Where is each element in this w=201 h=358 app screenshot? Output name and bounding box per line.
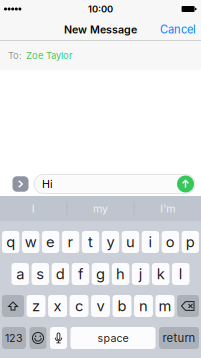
staticText: k xyxy=(157,265,165,283)
staticText: New Message xyxy=(64,23,137,36)
staticText: i xyxy=(148,233,152,251)
staticText: x xyxy=(53,297,61,315)
staticText: return xyxy=(162,331,195,345)
button[interactable]: space xyxy=(70,327,155,349)
button[interactable]: my xyxy=(67,196,134,221)
button[interactable]: Shift xyxy=(2,295,24,317)
staticText: v xyxy=(96,297,104,315)
button[interactable]: I'm xyxy=(134,196,201,221)
button[interactable]: l xyxy=(172,263,189,285)
staticText: f xyxy=(78,265,83,283)
button[interactable]: 123 xyxy=(2,327,26,349)
staticText: l xyxy=(179,265,183,283)
staticText: Cancel xyxy=(160,23,196,36)
staticText: j xyxy=(139,265,143,283)
staticText: c xyxy=(75,297,83,315)
staticText: a xyxy=(16,265,24,283)
staticText: r xyxy=(68,233,74,251)
staticText: n xyxy=(139,297,148,315)
button[interactable]: m xyxy=(155,295,174,317)
button[interactable]: v xyxy=(91,295,110,317)
staticText: w xyxy=(25,233,37,251)
staticText: my xyxy=(93,202,108,215)
button[interactable]: I xyxy=(0,196,66,221)
button[interactable]: w xyxy=(22,231,39,253)
button[interactable]: p xyxy=(182,231,199,253)
staticText: z xyxy=(32,297,40,315)
staticText: o xyxy=(166,233,175,251)
button[interactable]: o xyxy=(162,231,179,253)
staticText: y xyxy=(106,233,114,251)
button[interactable]: Emoji xyxy=(29,327,46,349)
button[interactable]: f xyxy=(72,263,89,285)
button[interactable]: c xyxy=(70,295,88,317)
staticText: u xyxy=(126,233,135,251)
button[interactable]: i xyxy=(142,231,159,253)
staticText: 123 xyxy=(5,331,23,344)
staticText: s xyxy=(36,265,44,283)
staticText: d xyxy=(56,265,65,283)
button[interactable]: e xyxy=(42,231,59,253)
button[interactable]: x xyxy=(48,295,67,317)
staticText: m xyxy=(158,297,171,315)
button[interactable]: Dictation xyxy=(50,327,67,349)
button[interactable]: Send xyxy=(176,174,194,194)
button[interactable]: z xyxy=(27,295,45,317)
staticText: space xyxy=(97,331,128,344)
staticText: To: xyxy=(8,50,22,61)
button[interactable]: a xyxy=(11,263,29,285)
staticText: t xyxy=(88,233,93,251)
button[interactable]: q xyxy=(2,231,19,253)
staticText: I'm xyxy=(160,202,175,215)
button[interactable]: y xyxy=(102,231,119,253)
staticText: p xyxy=(186,233,195,251)
button[interactable]: k xyxy=(152,263,169,285)
button[interactable]: Delete xyxy=(177,295,199,317)
button[interactable]: s xyxy=(32,263,49,285)
staticText: e xyxy=(46,233,55,251)
staticText: I xyxy=(32,202,35,215)
button[interactable]: return xyxy=(159,327,199,349)
button[interactable]: More options xyxy=(12,173,29,195)
button[interactable]: j xyxy=(132,263,149,285)
staticText: Zoe Taylor xyxy=(26,50,73,61)
button[interactable]: u xyxy=(122,231,139,253)
button[interactable]: r xyxy=(62,231,79,253)
button[interactable]: g xyxy=(92,263,109,285)
button[interactable]: Cancel xyxy=(155,18,201,41)
button[interactable]: d xyxy=(52,263,69,285)
button[interactable]: t xyxy=(82,231,99,253)
staticText: h xyxy=(116,265,125,283)
staticText: g xyxy=(96,265,105,283)
button[interactable]: b xyxy=(112,295,131,317)
staticText: q xyxy=(6,233,15,251)
staticText: b xyxy=(117,297,126,315)
button[interactable]: n xyxy=(134,295,153,317)
staticText: Hi xyxy=(42,177,53,190)
button[interactable]: h xyxy=(112,263,129,285)
staticText: 10:00 xyxy=(88,3,113,15)
